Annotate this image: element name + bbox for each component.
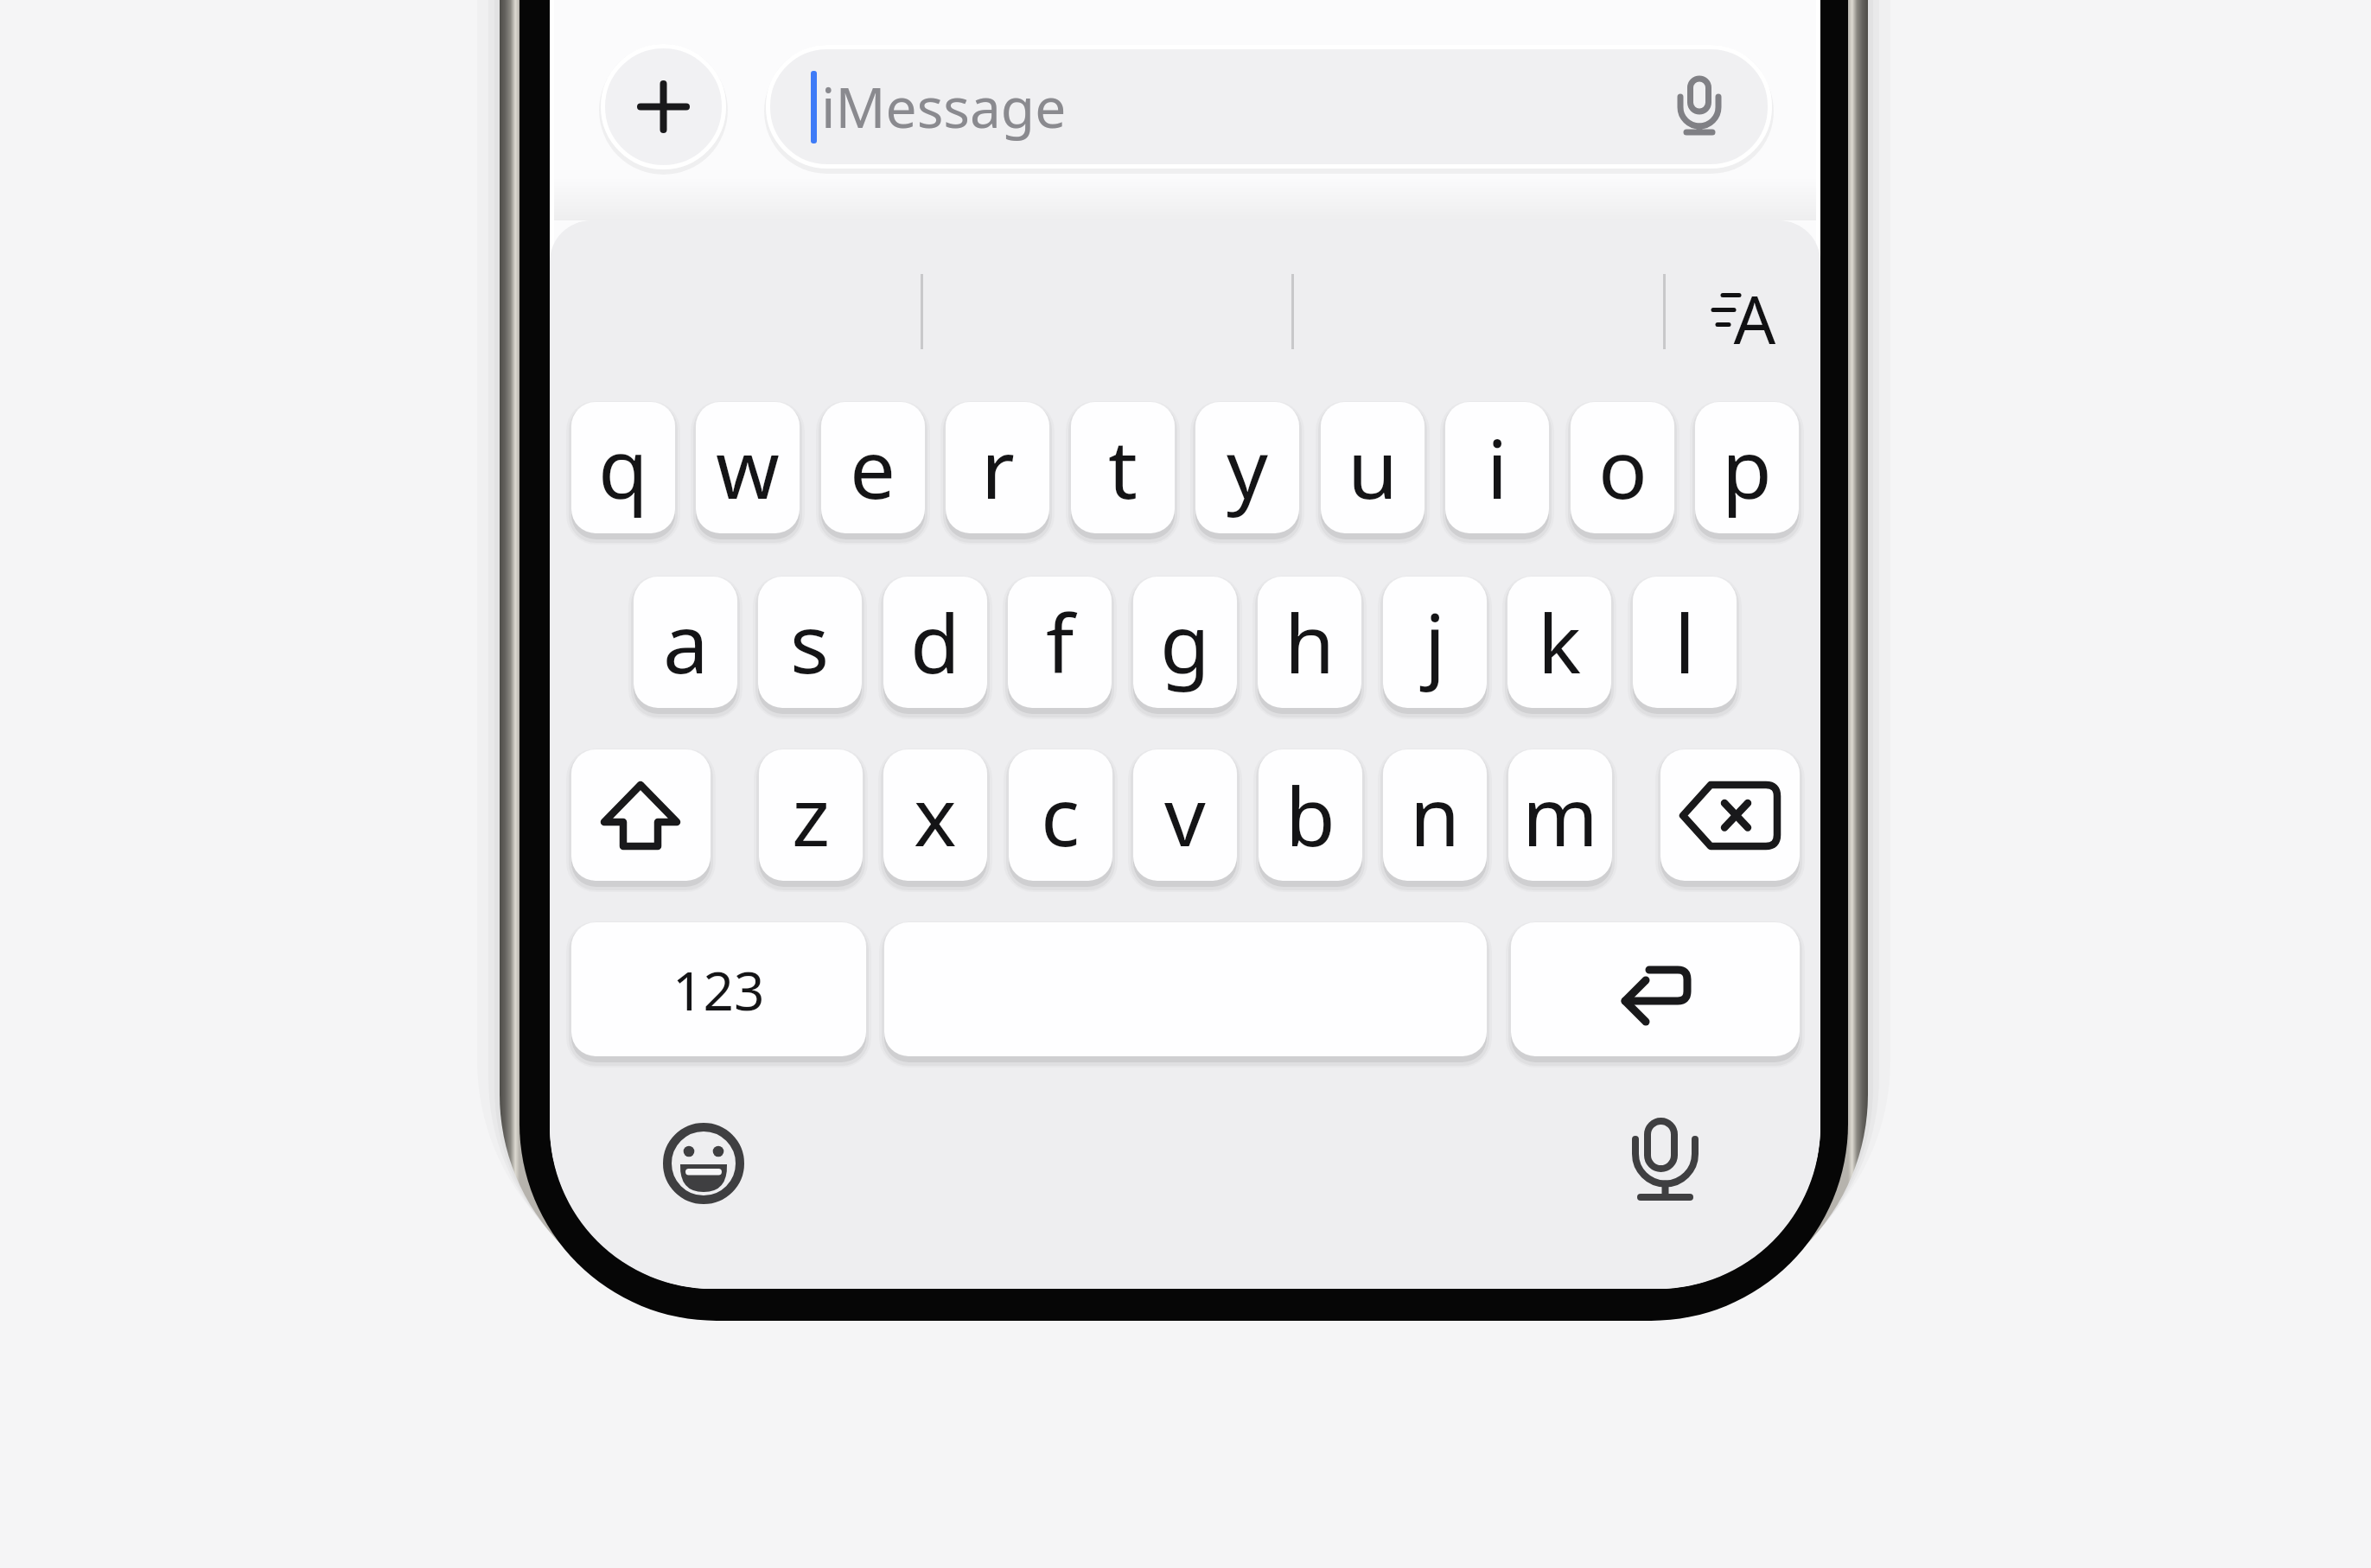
staticText: l xyxy=(1674,587,1696,698)
staticText: h xyxy=(1284,587,1335,698)
button[interactable]: 123 xyxy=(571,922,866,1056)
button[interactable]: i xyxy=(1445,402,1549,533)
button[interactable]: b xyxy=(1259,749,1362,881)
button[interactable]: g xyxy=(1133,577,1237,708)
button[interactable]: d xyxy=(883,577,987,708)
staticText: j xyxy=(1425,587,1446,698)
button[interactable]: l xyxy=(1633,577,1737,708)
button[interactable]: a xyxy=(634,577,737,708)
button[interactable] xyxy=(1694,268,1781,350)
button[interactable]: w xyxy=(696,402,800,533)
button[interactable] xyxy=(766,45,1772,169)
staticText: q xyxy=(598,412,648,523)
button[interactable] xyxy=(1511,922,1800,1056)
staticText: x xyxy=(914,760,957,870)
staticText: m xyxy=(1522,760,1598,870)
staticText: o xyxy=(1598,412,1648,523)
button[interactable]: j xyxy=(1383,577,1487,708)
button[interactable]: h xyxy=(1258,577,1361,708)
staticText: z xyxy=(792,760,831,870)
button[interactable]: v xyxy=(1133,749,1237,881)
button[interactable] xyxy=(571,749,711,881)
staticText: r xyxy=(981,412,1015,523)
button[interactable]: x xyxy=(883,749,987,881)
staticText: s xyxy=(790,587,830,698)
button[interactable]: f xyxy=(1008,577,1112,708)
button[interactable] xyxy=(1673,73,1725,138)
button[interactable]: t xyxy=(1071,402,1175,533)
staticText: i xyxy=(1487,412,1508,523)
button[interactable]: p xyxy=(1695,402,1799,533)
staticText: 123 xyxy=(672,953,765,1026)
button[interactable] xyxy=(884,922,1487,1056)
button[interactable] xyxy=(662,1122,745,1205)
staticText: p xyxy=(1722,412,1772,523)
button[interactable]: q xyxy=(571,402,675,533)
staticText: y xyxy=(1227,412,1268,523)
staticText: n xyxy=(1410,760,1461,870)
button[interactable]: u xyxy=(1321,402,1425,533)
staticText: a xyxy=(663,587,709,698)
button[interactable]: k xyxy=(1507,577,1611,708)
staticText: e xyxy=(850,412,896,523)
staticText: t xyxy=(1108,412,1138,523)
button[interactable] xyxy=(1660,749,1800,881)
staticText: v xyxy=(1164,760,1206,870)
button[interactable]: e xyxy=(821,402,925,533)
staticText: g xyxy=(1160,587,1210,698)
button[interactable]: m xyxy=(1508,749,1612,881)
button[interactable] xyxy=(601,44,726,169)
staticText: b xyxy=(1285,760,1335,870)
button[interactable]: z xyxy=(759,749,863,881)
button[interactable]: c xyxy=(1009,749,1112,881)
staticText: d xyxy=(910,587,960,698)
staticText: u xyxy=(1348,412,1399,523)
button[interactable] xyxy=(1623,1119,1707,1202)
staticText: iMessage xyxy=(821,69,1067,144)
button[interactable]: o xyxy=(1571,402,1674,533)
button[interactable]: n xyxy=(1383,749,1487,881)
button[interactable]: y xyxy=(1195,402,1299,533)
staticText: c xyxy=(1041,760,1080,870)
staticText: A xyxy=(1733,273,1776,344)
staticText: w xyxy=(716,412,780,523)
button[interactable]: s xyxy=(758,577,862,708)
button[interactable]: r xyxy=(946,402,1049,533)
staticText: k xyxy=(1538,587,1582,698)
staticText: f xyxy=(1046,587,1074,698)
